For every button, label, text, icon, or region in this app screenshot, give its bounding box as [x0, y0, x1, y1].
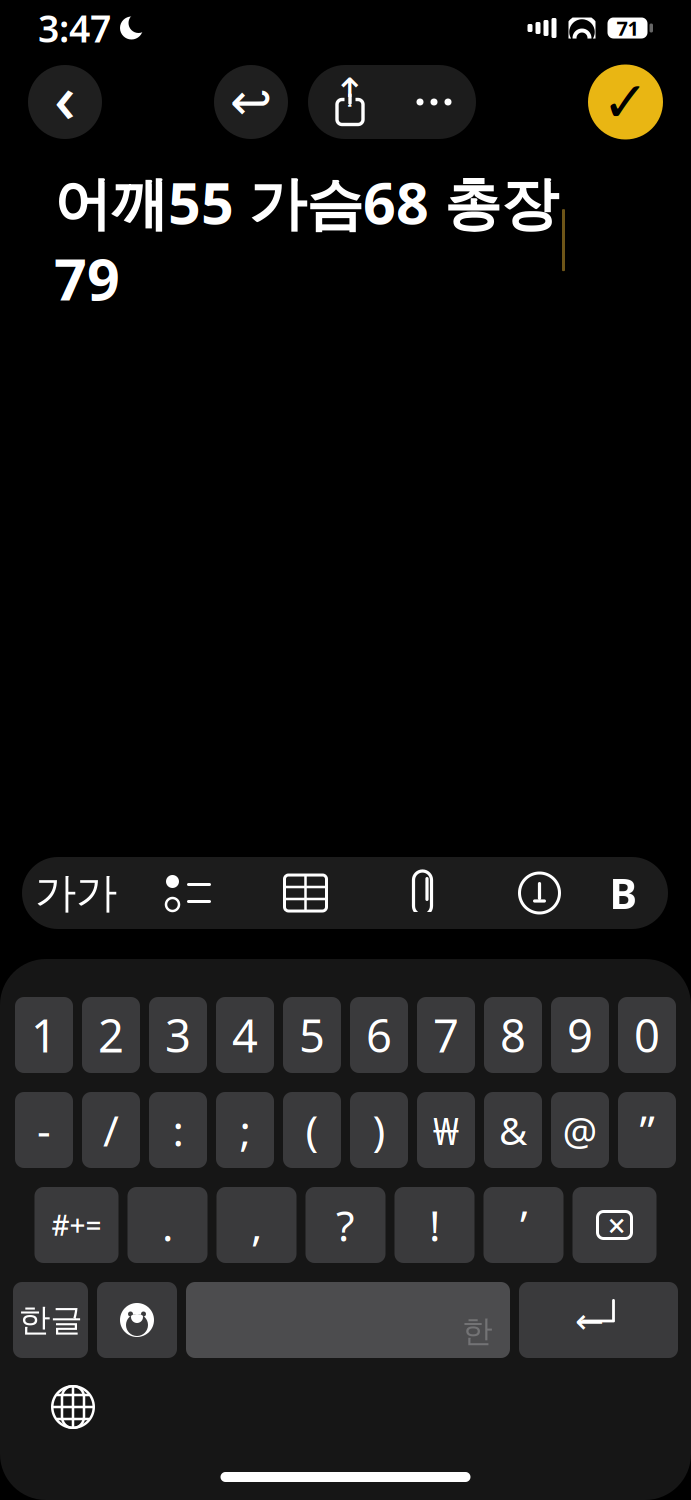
button[interactable]: .: [127, 1187, 207, 1263]
staticText: ₩: [433, 1104, 459, 1156]
staticText: 71: [616, 15, 638, 41]
staticText: ?: [336, 1197, 355, 1253]
button[interactable]: Emoji: [97, 1282, 177, 1358]
button[interactable]: 9: [551, 997, 609, 1073]
button[interactable]: 한글: [13, 1282, 88, 1358]
button[interactable]: ;: [216, 1092, 274, 1168]
staticText: -: [37, 1102, 51, 1158]
staticText: 7: [433, 1005, 459, 1065]
button[interactable]: Return: [519, 1282, 678, 1358]
button[interactable]: Table: [247, 857, 364, 929]
staticText: ×: [607, 1204, 625, 1246]
staticText: 한글: [18, 1300, 82, 1340]
staticText: .: [162, 1197, 173, 1253]
button[interactable]: ’: [483, 1187, 563, 1263]
staticText: /: [103, 1102, 119, 1158]
button[interactable]: Checklist: [130, 857, 247, 929]
staticText: ↑: [333, 70, 367, 116]
button[interactable]: -: [15, 1092, 73, 1168]
button[interactable]: Next keyboard: [38, 1372, 108, 1442]
button[interactable]: 5: [283, 997, 341, 1073]
button[interactable]: &: [484, 1092, 542, 1168]
staticText: ): [372, 1102, 385, 1158]
staticText: 어깨55 가슴68 총장79: [54, 164, 558, 316]
staticText: ‹: [54, 53, 76, 141]
button[interactable]: 3: [149, 997, 207, 1073]
staticText: ✓: [602, 70, 649, 134]
staticText: ↩: [230, 73, 272, 131]
staticText: !: [429, 1197, 440, 1253]
button[interactable]: Attach: [364, 857, 481, 929]
button[interactable]: ”: [618, 1092, 676, 1168]
button[interactable]: Bold: [598, 857, 648, 929]
staticText: 3: [165, 1005, 191, 1065]
button[interactable]: 4: [216, 997, 274, 1073]
staticText: ,: [251, 1197, 262, 1253]
button[interactable]: ,: [216, 1187, 296, 1263]
button[interactable]: @: [551, 1092, 609, 1168]
staticText: 4: [232, 1005, 258, 1065]
button[interactable]: Back: [28, 65, 102, 139]
staticText: 6: [366, 1005, 392, 1065]
staticText: 9: [567, 1005, 593, 1065]
staticText: 8: [500, 1005, 526, 1065]
button[interactable]: 6: [350, 997, 408, 1073]
button[interactable]: ₩: [417, 1092, 475, 1168]
button[interactable]: Markup: [481, 857, 598, 929]
staticText: ”: [639, 1102, 654, 1158]
button[interactable]: 2: [82, 997, 140, 1073]
button[interactable]: #+=: [34, 1187, 118, 1263]
button[interactable]: 7: [417, 997, 475, 1073]
staticText: 1: [31, 1005, 57, 1065]
staticText: 3:47: [38, 3, 111, 53]
staticText: (: [305, 1102, 318, 1158]
button[interactable]: ?: [305, 1187, 385, 1263]
button[interactable]: 8: [484, 997, 542, 1073]
button[interactable]: /: [82, 1092, 140, 1168]
staticText: 2: [98, 1005, 124, 1065]
staticText: 0: [634, 1005, 660, 1065]
button[interactable]: Space: [186, 1282, 510, 1358]
staticText: 5: [299, 1005, 325, 1065]
staticText: @: [562, 1104, 597, 1156]
button[interactable]: 1: [15, 997, 73, 1073]
staticText: ←: [575, 1301, 604, 1341]
button[interactable]: 0: [618, 997, 676, 1073]
button[interactable]: !: [394, 1187, 474, 1263]
button[interactable]: (: [283, 1092, 341, 1168]
staticText: :: [172, 1102, 183, 1158]
staticText: B: [609, 866, 636, 920]
staticText: ’: [520, 1197, 527, 1253]
button[interactable]: :: [149, 1092, 207, 1168]
button[interactable]: Undo: [214, 65, 288, 139]
staticText: &: [499, 1104, 527, 1156]
button[interactable]: ): [350, 1092, 408, 1168]
button[interactable]: Delete: [572, 1187, 656, 1263]
button[interactable]: 가가: [22, 857, 130, 929]
staticText: ;: [239, 1102, 250, 1158]
staticText: 한: [462, 1312, 493, 1350]
button[interactable]: Done: [588, 64, 663, 139]
button[interactable]: More: [392, 65, 476, 139]
staticText: #+=: [51, 1206, 101, 1244]
staticText: 가가: [35, 868, 117, 918]
button[interactable]: Share: [308, 65, 392, 139]
